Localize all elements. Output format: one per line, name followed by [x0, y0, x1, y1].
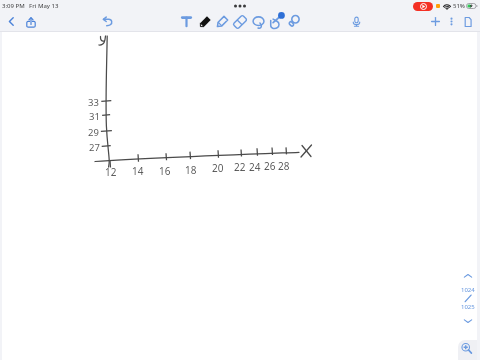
button[interactable]: Add	[429, 15, 442, 28]
button[interactable]: Next page	[461, 314, 475, 328]
button[interactable]: Pages	[461, 15, 475, 29]
staticText: 27	[89, 141, 100, 154]
staticText: 3:09 PM	[2, 2, 25, 10]
button[interactable]: Zoom	[458, 340, 477, 360]
button[interactable]: Magnifier tool	[286, 14, 301, 29]
button[interactable]: Pen tool	[196, 13, 214, 31]
staticText: 18	[185, 163, 197, 177]
button[interactable]: Previous page	[461, 269, 475, 283]
staticText: 1024	[461, 286, 475, 294]
button[interactable]: Select tool	[268, 13, 285, 30]
staticText: Fri May 13	[29, 2, 59, 10]
staticText: 28	[278, 159, 290, 173]
staticText: 29	[88, 126, 99, 139]
button[interactable]: Eraser tool	[231, 13, 249, 31]
staticText: 26	[264, 159, 276, 173]
staticText: 22	[234, 160, 246, 174]
staticText: 33	[88, 96, 99, 109]
button[interactable]: Text tool	[180, 15, 193, 28]
staticText: 14	[132, 164, 144, 178]
button[interactable]: Undo	[101, 15, 114, 28]
button[interactable]: More options	[446, 16, 457, 27]
button[interactable]: Highlighter tool	[213, 13, 231, 31]
button[interactable]: Microphone	[350, 15, 363, 28]
button[interactable]: Share	[24, 15, 38, 29]
staticText: 51%	[453, 2, 465, 10]
staticText: 12	[105, 165, 117, 179]
button[interactable]: Back	[5, 15, 18, 28]
staticText: 16	[159, 164, 171, 178]
staticText: 31	[89, 110, 100, 123]
staticText: 24	[249, 160, 261, 174]
staticText: 20	[212, 161, 224, 175]
staticText: 1025	[461, 303, 475, 311]
button[interactable]: Lasso tool	[251, 14, 267, 30]
